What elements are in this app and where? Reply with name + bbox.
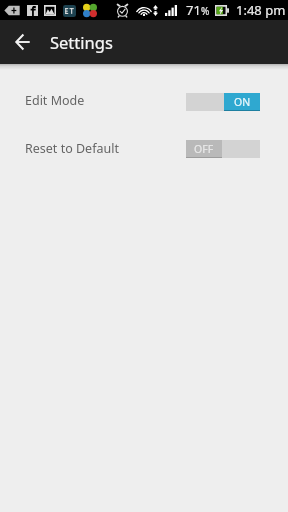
staticText: Edit Mode xyxy=(25,92,85,109)
button[interactable]: Edit Mode switch, on xyxy=(186,93,260,111)
staticText: 71 xyxy=(186,1,201,19)
staticText: Reset to Default xyxy=(25,140,119,157)
button[interactable]: Navigate up xyxy=(0,20,46,64)
button[interactable]: Edit Mode xyxy=(0,93,288,111)
staticText: % xyxy=(201,4,210,18)
button[interactable]: Reset to Default switch, off xyxy=(186,140,260,158)
staticText: 1:48 pm xyxy=(236,1,286,19)
staticText: OFF xyxy=(194,142,214,156)
staticText: ON xyxy=(234,95,251,109)
button[interactable]: Reset to Default xyxy=(0,140,288,158)
staticText: Settings xyxy=(50,31,113,53)
